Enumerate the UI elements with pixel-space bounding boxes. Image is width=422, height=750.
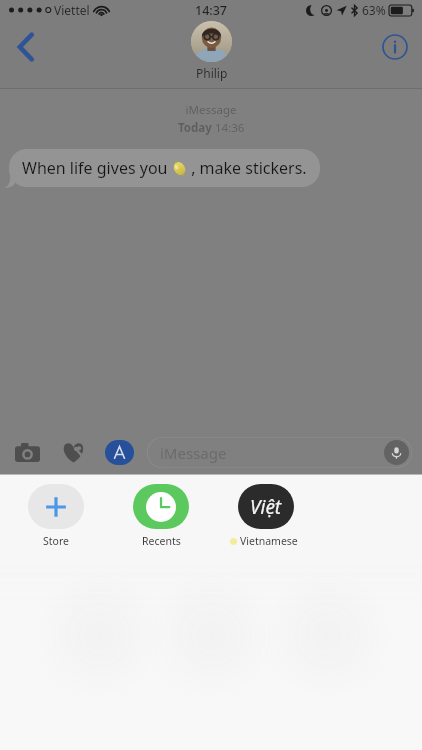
button[interactable]: iMessage [147,437,412,468]
staticText: Today [178,120,215,136]
staticText: , make stickers. [187,157,307,179]
staticText: Việt [250,494,282,520]
button[interactable]: Details [368,22,422,72]
staticText: iMessage [0,102,422,118]
button[interactable]: App Store [100,433,138,471]
button[interactable]: Việt [230,484,302,548]
staticText: iMessage [160,443,227,463]
staticText: 63% [362,2,386,18]
button[interactable]: Recents [125,484,197,548]
staticText: 14:37 [195,2,228,19]
staticText: Store [43,534,69,548]
staticText: When life gives you [22,157,172,179]
staticText: Vietnamese… [240,534,302,548]
staticText: Philip [196,65,228,81]
button[interactable]: Store [20,484,92,548]
staticText: Recents [142,534,181,548]
button[interactable]: Philip [191,21,232,81]
button[interactable]: Dictation [384,440,409,465]
button[interactable]: Camera [8,433,46,471]
button[interactable]: Digital Touch [54,433,92,471]
staticText: Viettel [54,2,90,18]
staticText: 14:36 [215,120,245,136]
button[interactable]: Back [0,22,52,72]
button[interactable]: When life gives you [9,149,320,187]
